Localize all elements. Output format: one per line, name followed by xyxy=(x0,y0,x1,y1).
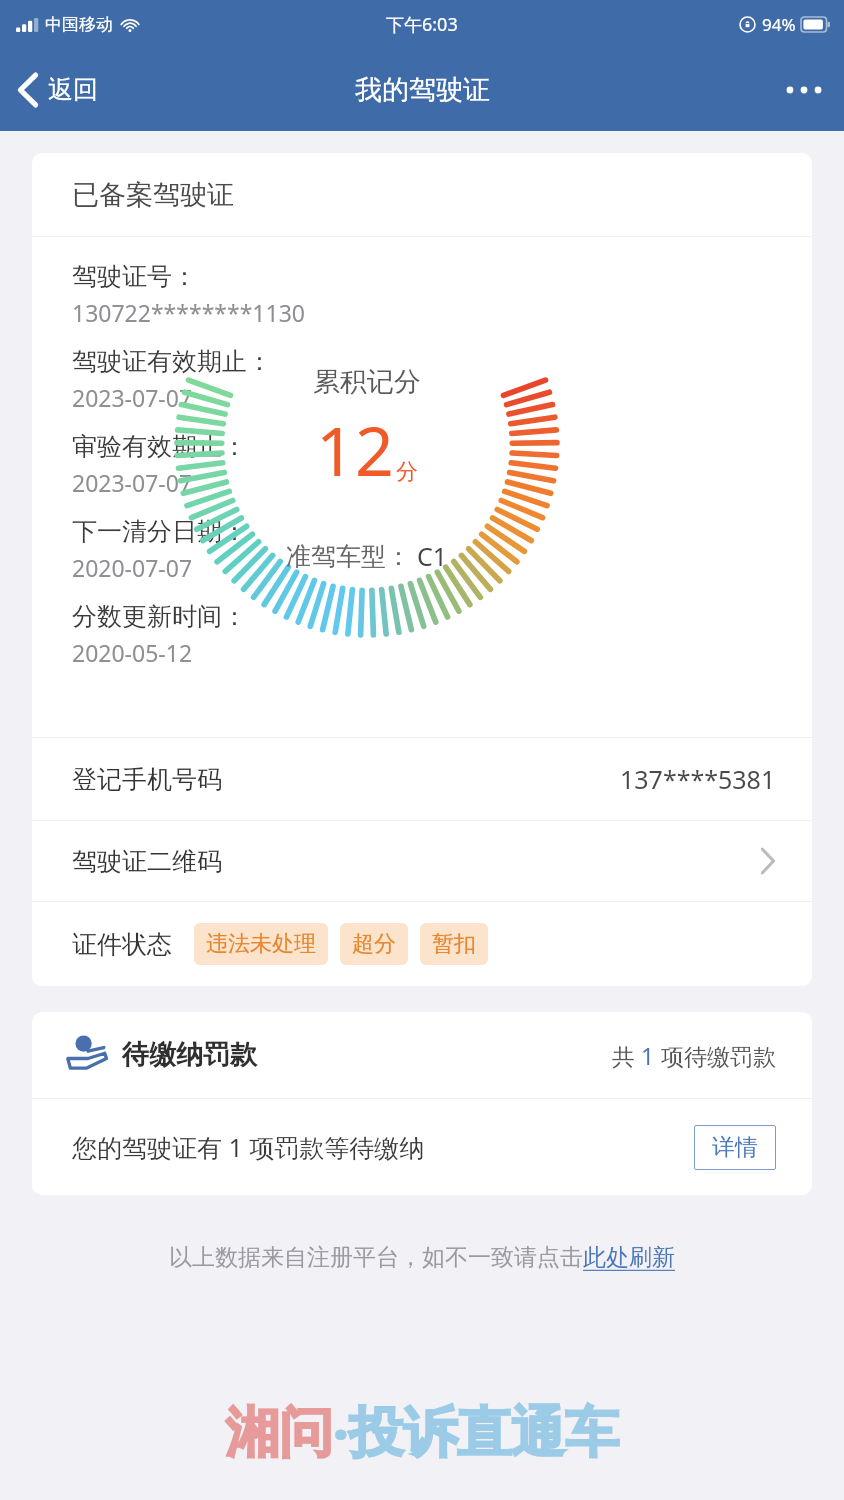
staticText: 2020-05-12 xyxy=(72,637,193,668)
staticText: · xyxy=(333,1396,349,1470)
staticText: 130722********1130 xyxy=(72,297,305,328)
staticText: 准驾车型： xyxy=(286,541,411,572)
staticText: C1 xyxy=(417,539,448,573)
staticText: 2023-07-07 xyxy=(72,467,193,498)
staticText: 1 xyxy=(641,1040,655,1071)
staticText: 累积记分 xyxy=(313,365,421,399)
staticText: 投诉直通车 xyxy=(349,1399,619,1467)
staticText: 登记手机号码 xyxy=(72,764,222,795)
button[interactable]: 详情 xyxy=(694,1125,776,1170)
staticText: 此处刷新 xyxy=(583,1243,675,1272)
button[interactable]: 登记手机号码 xyxy=(32,738,812,820)
staticText: 分数更新时间： xyxy=(72,601,247,632)
staticText: 94% xyxy=(762,13,796,36)
staticText: 证件状态 xyxy=(72,929,172,960)
staticText: 中国移动 xyxy=(45,14,113,35)
staticText: 返回 xyxy=(48,74,98,105)
button[interactable]: More options xyxy=(764,48,844,131)
staticText: 12 xyxy=(316,403,394,496)
button[interactable]: 违法未处理 xyxy=(194,923,328,965)
staticText: 项待缴罚款 xyxy=(655,1040,776,1071)
staticText: 待缴纳罚款 xyxy=(122,1038,257,1072)
button[interactable]: 暂扣 xyxy=(420,923,488,965)
button[interactable]: 驾驶证二维码 xyxy=(32,821,812,901)
staticText: 137****5381 xyxy=(620,762,776,796)
staticText: 驾驶证有效期止： xyxy=(72,346,272,377)
button[interactable]: 返回 xyxy=(0,48,112,131)
staticText: 2020-07-07 xyxy=(72,552,193,583)
staticText: 驾驶证号： xyxy=(72,261,197,292)
staticText: 共 xyxy=(612,1040,641,1071)
staticText: 审验有效期止： xyxy=(72,431,247,462)
staticText: 我的驾驶证 xyxy=(355,73,490,107)
button[interactable]: 超分 xyxy=(340,923,408,965)
staticText: 分 xyxy=(396,458,418,486)
staticText: 已备案驾驶证 xyxy=(72,178,234,212)
staticText: 暂扣 xyxy=(432,930,476,958)
staticText: 湘问 xyxy=(225,1399,333,1467)
button[interactable]: 此处刷新 xyxy=(583,1243,675,1272)
staticText: 驾驶证二维码 xyxy=(72,846,222,877)
staticText: 您的驾驶证有 1 项罚款等待缴纳 xyxy=(72,1130,425,1164)
staticText: 下午6:03 xyxy=(386,12,458,37)
staticText: 详情 xyxy=(712,1133,758,1162)
staticText: 下一清分日期： xyxy=(72,516,247,547)
staticText: 2023-07-07 xyxy=(72,382,193,413)
staticText: 违法未处理 xyxy=(206,930,316,958)
staticText: 超分 xyxy=(352,930,396,958)
staticText: 以上数据来自注册平台，如不一致请点击 xyxy=(169,1243,583,1272)
